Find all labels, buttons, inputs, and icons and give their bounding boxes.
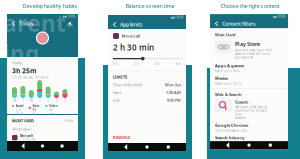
button[interactable]: Back [10, 18, 16, 28]
staticText: ▮ ▮ 100% [63, 15, 75, 18]
staticText: Today [19, 20, 34, 27]
staticText: Start [113, 90, 121, 95]
staticText: Apps and games your child wants to insta… [235, 48, 272, 59]
staticText: S [56, 99, 57, 102]
button[interactable]: Home [143, 143, 151, 151]
staticText: Most Used [215, 32, 236, 37]
staticText: 6 h [176, 62, 181, 66]
staticText: W [30, 99, 32, 102]
staticText: Minecraft [20, 134, 33, 138]
button[interactable]: Back [224, 140, 231, 150]
staticText: Google Chrome [215, 123, 248, 128]
staticText: Days of the week [113, 82, 142, 87]
staticText: Today ▾ [64, 119, 73, 122]
staticText: Minecraft [121, 33, 140, 39]
staticText: Google [235, 99, 248, 104]
staticText: End [113, 98, 119, 103]
button[interactable]: Home [245, 141, 253, 149]
staticText: Social [16, 104, 24, 108]
staticText: Wind down [12, 126, 31, 132]
staticText: 2 h [134, 62, 139, 66]
staticText: Collect Google searches [215, 141, 249, 145]
button[interactable]: Back [122, 142, 129, 152]
staticText: 1 h 02 min [20, 138, 36, 141]
staticText: 3h 25m [12, 66, 37, 75]
staticText: Try to block mature sites [215, 129, 247, 132]
staticText: ▮ ▮ 100% [171, 16, 183, 19]
staticText: Rated up to PG-13 [215, 82, 242, 85]
staticText: App limits [120, 21, 143, 28]
staticText: 7:30 AM [166, 90, 181, 95]
staticText: Play Store [235, 40, 260, 47]
staticText: REMOVE [113, 135, 130, 140]
button[interactable]: Back [213, 19, 219, 29]
staticText: arenting [3, 8, 73, 68]
staticText: Today [12, 60, 22, 65]
staticText: Balance screen time [125, 2, 174, 10]
staticText: Video [49, 104, 58, 108]
staticText: MOST USED [12, 118, 34, 123]
staticText: T [39, 99, 40, 102]
button[interactable]: Back [111, 19, 117, 29]
button[interactable]: Recents [267, 142, 274, 149]
staticText: Rated up to Teen [215, 69, 240, 73]
button[interactable]: Back [19, 141, 26, 151]
staticText: 1 h 12 m [16, 108, 23, 115]
button[interactable]: Home [39, 142, 46, 150]
staticText: Movies [215, 75, 228, 81]
staticText: arenting [3, 50, 73, 110]
staticText: 52 min [32, 112, 37, 119]
staticText: Games [32, 104, 40, 111]
staticText: 0 h [113, 62, 118, 66]
button[interactable]: Recents [165, 143, 172, 150]
button[interactable]: Sound [66, 19, 75, 28]
staticText: 8:00 PM [167, 98, 181, 103]
staticText: M [13, 99, 15, 102]
staticText: Develop healthy habits [22, 2, 77, 10]
staticText: Choose the right content [220, 2, 279, 10]
staticText: Apps & games [215, 63, 244, 68]
staticText: F [48, 99, 49, 102]
staticText: 2 h 40 min avg. this week [12, 76, 48, 79]
staticText: LIMITS [113, 74, 127, 79]
staticText: Content filters [222, 20, 256, 27]
staticText: Web & Search [215, 92, 242, 97]
staticText: Mon–Sun [165, 82, 181, 87]
button[interactable]: Recents [58, 142, 65, 149]
staticText: S [64, 99, 65, 102]
staticText: Search history [215, 135, 244, 140]
button[interactable]: REMOVE [108, 133, 135, 142]
staticText: 2 h 30 min [113, 42, 154, 53]
staticText: 40 min [49, 108, 54, 115]
staticText: ▮ ▮ 100% [273, 15, 285, 18]
staticText: SafeSearch is ON. Explicit results will … [235, 105, 267, 120]
staticText: 4 h [155, 62, 160, 66]
